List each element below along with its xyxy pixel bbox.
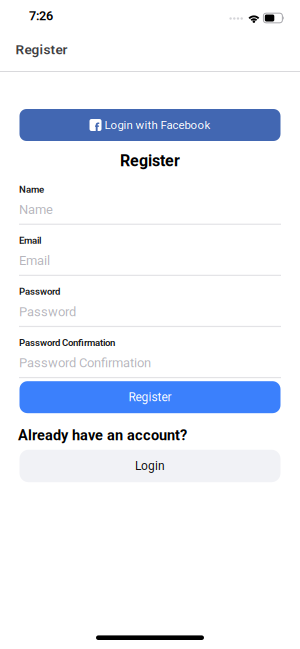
staticText: 7:26 (29, 9, 53, 23)
staticText: Name (19, 202, 53, 217)
staticText: f (94, 120, 99, 136)
button[interactable]: Login (19, 450, 280, 482)
staticText: Register (120, 151, 180, 170)
staticText: Password Confirmation (19, 355, 151, 370)
staticText: Name (19, 184, 44, 195)
staticText: Already have an account? (18, 427, 187, 444)
staticText: Email (19, 253, 50, 268)
staticText: Password Confirmation (19, 337, 115, 348)
staticText: Register (128, 390, 171, 404)
staticText: Login with Facebook (104, 118, 210, 132)
staticText: Login (135, 459, 165, 473)
staticText: Password (19, 304, 76, 319)
staticText: Register (15, 41, 67, 57)
staticText: Email (19, 235, 41, 246)
button[interactable]: Register (19, 381, 280, 413)
button[interactable]: f (19, 109, 280, 141)
staticText: Password (19, 286, 60, 297)
